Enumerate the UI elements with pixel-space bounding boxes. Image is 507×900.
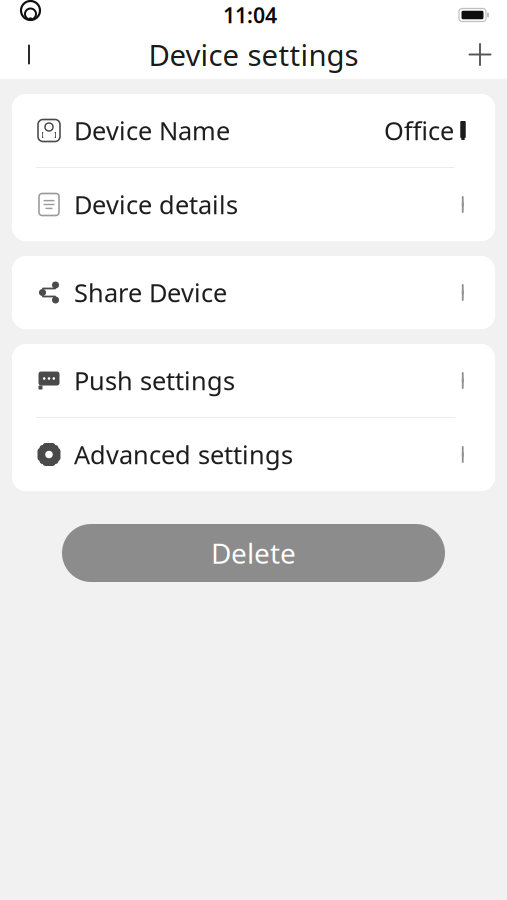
button[interactable]: Close xyxy=(453,30,507,78)
button[interactable]: Delete xyxy=(62,524,445,582)
staticText: Push settings xyxy=(74,364,235,397)
button[interactable]: Device Name xyxy=(12,94,495,167)
button[interactable]: Back xyxy=(0,30,54,78)
staticText: Device details xyxy=(74,188,238,221)
button[interactable]: Push settings xyxy=(12,344,495,417)
button[interactable]: Device details xyxy=(12,168,495,241)
staticText: Office xyxy=(384,114,454,147)
staticText: Advanced settings xyxy=(74,438,293,471)
staticText: Device settings xyxy=(148,35,358,74)
staticText: Share Device xyxy=(74,276,227,309)
button[interactable]: Share Device xyxy=(12,256,495,329)
staticText: 11:04 xyxy=(223,1,277,29)
button[interactable]: Advanced settings xyxy=(12,418,495,491)
staticText: Delete xyxy=(211,534,296,572)
staticText: Device Name xyxy=(74,114,230,147)
